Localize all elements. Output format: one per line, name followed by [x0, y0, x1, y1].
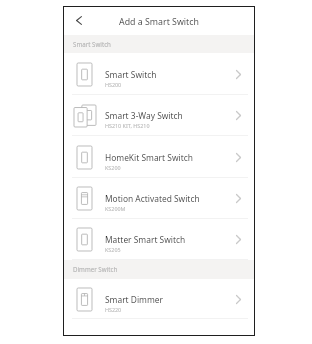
staticText: HS200 [105, 81, 122, 88]
button[interactable]: HomeKit Smart Switch [64, 136, 254, 178]
button[interactable]: Motion Activated Switch [64, 177, 254, 219]
button[interactable]: Smart Dimmer [64, 278, 254, 319]
staticText: KS200 [105, 164, 121, 171]
staticText: Smart Dimmer [105, 294, 164, 305]
staticText: KS205 [105, 246, 121, 253]
staticText: Add a Smart Switch [119, 16, 199, 28]
staticText: Smart 3-Way Switch [105, 110, 183, 121]
button[interactable]: Smart 3-Way Switch [64, 94, 254, 136]
button[interactable]: Smart Switch [64, 53, 254, 95]
staticText: Smart Switch [73, 40, 111, 48]
staticText: KS200M [105, 205, 126, 212]
staticText: HS220 [105, 306, 122, 313]
staticText: HS210 KIT, HS210 [105, 122, 150, 129]
staticText: Matter Smart Switch [105, 234, 186, 245]
staticText: HomeKit Smart Switch [105, 152, 193, 163]
staticText: Dimmer Switch [73, 265, 118, 273]
button[interactable]: Back [71, 12, 87, 28]
staticText: Smart Switch [105, 69, 157, 80]
staticText: Motion Activated Switch [105, 193, 200, 204]
button[interactable]: Matter Smart Switch [64, 218, 254, 260]
